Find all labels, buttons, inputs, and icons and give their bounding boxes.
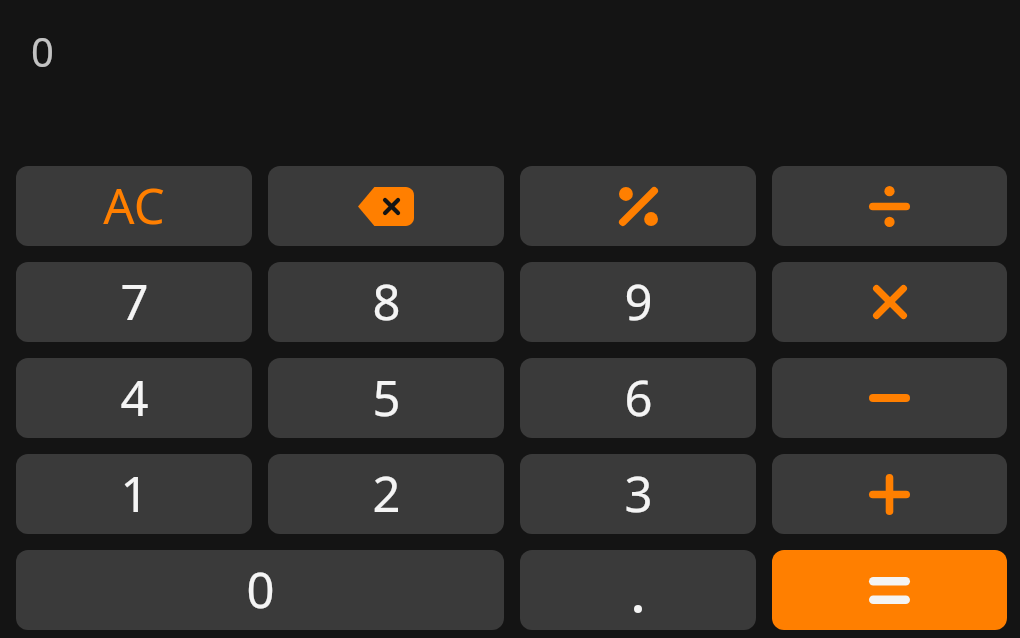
button[interactable]: Decimal point — [520, 550, 756, 630]
staticText: 5 — [372, 364, 401, 431]
button[interactable]: Equals — [772, 550, 1007, 630]
button[interactable]: 8 — [268, 262, 504, 342]
button[interactable]: Backspace — [268, 166, 504, 246]
staticText: 7 — [120, 268, 149, 335]
button[interactable]: Minus — [772, 358, 1007, 438]
button[interactable]: AC — [16, 166, 252, 246]
button[interactable]: 9 — [520, 262, 756, 342]
staticText: 2 — [372, 460, 401, 527]
staticText: 0 — [246, 556, 275, 623]
button[interactable]: Plus — [772, 454, 1007, 534]
button[interactable]: 3 — [520, 454, 756, 534]
button[interactable]: 7 — [16, 262, 252, 342]
staticText: 0 — [31, 24, 54, 78]
staticText: AC — [103, 172, 165, 239]
button[interactable]: 6 — [520, 358, 756, 438]
button[interactable]: Percent — [520, 166, 756, 246]
button[interactable]: 0 — [16, 550, 504, 630]
staticText: 4 — [120, 364, 149, 431]
button[interactable]: Multiply — [772, 262, 1007, 342]
button[interactable]: 1 — [16, 454, 252, 534]
staticText: 1 — [120, 460, 149, 527]
button[interactable]: 5 — [268, 358, 504, 438]
staticText: 9 — [624, 268, 653, 335]
button[interactable]: Divide — [772, 166, 1007, 246]
button[interactable]: 2 — [268, 454, 504, 534]
staticText: 8 — [372, 268, 401, 335]
staticText: 3 — [624, 460, 653, 527]
staticText: 6 — [624, 364, 653, 431]
button[interactable]: 4 — [16, 358, 252, 438]
